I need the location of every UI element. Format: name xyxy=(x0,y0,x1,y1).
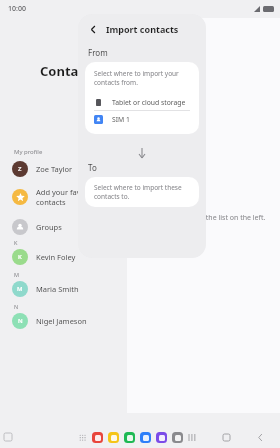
staticText: Select a contact from the list on the le… xyxy=(135,213,266,223)
staticText: Contacts xyxy=(40,62,98,80)
staticText: SIM 1 xyxy=(112,115,130,124)
button[interactable]: K xyxy=(12,246,127,268)
button[interactable]: Groups xyxy=(12,216,127,238)
button[interactable]: Internet xyxy=(156,432,167,443)
staticText: M xyxy=(14,271,19,278)
button[interactable]: M xyxy=(12,278,127,300)
button[interactable]: Home xyxy=(220,431,232,443)
button[interactable]: Add your favourite xyxy=(12,184,127,210)
staticText: Z xyxy=(18,165,22,173)
staticText: Zoe Taylor xyxy=(36,164,73,174)
staticText: N xyxy=(14,303,19,310)
button[interactable]: Recents xyxy=(186,431,198,443)
button[interactable]: SIM 1 xyxy=(94,111,190,127)
button[interactable]: Tablet or cloud storage xyxy=(94,94,190,110)
staticText: K xyxy=(14,239,18,246)
button[interactable]: Back xyxy=(86,22,100,36)
staticText: K xyxy=(18,253,22,261)
staticText: 10:00 xyxy=(8,4,26,14)
staticText: Kevin Foley xyxy=(36,252,76,262)
button[interactable]: Apps xyxy=(78,433,87,442)
staticText: Maria Smith xyxy=(36,284,79,294)
staticText: My profile xyxy=(14,148,43,156)
staticText: To xyxy=(88,162,97,173)
staticText: Select where to import your contacts fro… xyxy=(94,69,190,87)
staticText: contacts xyxy=(36,197,66,207)
staticText: Groups xyxy=(36,222,62,232)
staticText: Tablet or cloud storage xyxy=(112,98,186,107)
staticText: Import contacts xyxy=(106,23,179,35)
button[interactable]: Messages xyxy=(92,432,103,443)
button[interactable]: Contacts xyxy=(140,432,151,443)
staticText: M xyxy=(17,285,23,293)
button[interactable]: Camera xyxy=(172,432,183,443)
button[interactable]: Notes xyxy=(108,432,119,443)
button[interactable]: Phone xyxy=(124,432,135,443)
staticText: Select where to import these contacts to… xyxy=(94,183,190,201)
staticText: Nigel Jameson xyxy=(36,316,87,326)
staticText: From xyxy=(88,47,108,58)
button[interactable]: Keyboard xyxy=(4,433,12,441)
staticText: Add your favourite xyxy=(36,187,102,197)
button[interactable]: Back xyxy=(254,431,266,443)
button[interactable]: Z xyxy=(12,158,127,180)
button[interactable]: N xyxy=(12,310,127,332)
staticText: N xyxy=(18,317,23,325)
